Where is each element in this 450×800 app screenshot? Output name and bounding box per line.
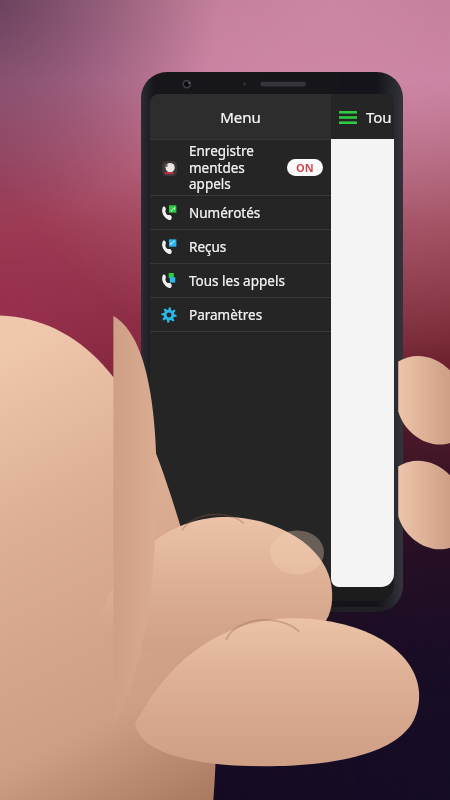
button[interactable]: Tous les appels <box>150 264 331 297</box>
button[interactable]: Open navigation menu <box>336 105 360 129</box>
staticText: Numérotés <box>189 204 261 222</box>
staticText: Reçus <box>189 238 227 256</box>
button[interactable]: Paramètres <box>150 298 331 331</box>
staticText: Menu <box>220 107 261 127</box>
staticText: ON <box>296 160 314 175</box>
staticText: Tous les appels <box>189 272 285 290</box>
staticText: Enregistrementdes appels <box>189 142 259 193</box>
button[interactable]: Reçus <box>150 230 331 263</box>
button[interactable]: Enregistrementdes appels <box>150 140 331 195</box>
button[interactable]: ON <box>287 159 323 176</box>
staticText: Paramètres <box>189 306 263 324</box>
staticText: Tou <box>366 107 392 127</box>
button[interactable]: Numérotés <box>150 196 331 229</box>
